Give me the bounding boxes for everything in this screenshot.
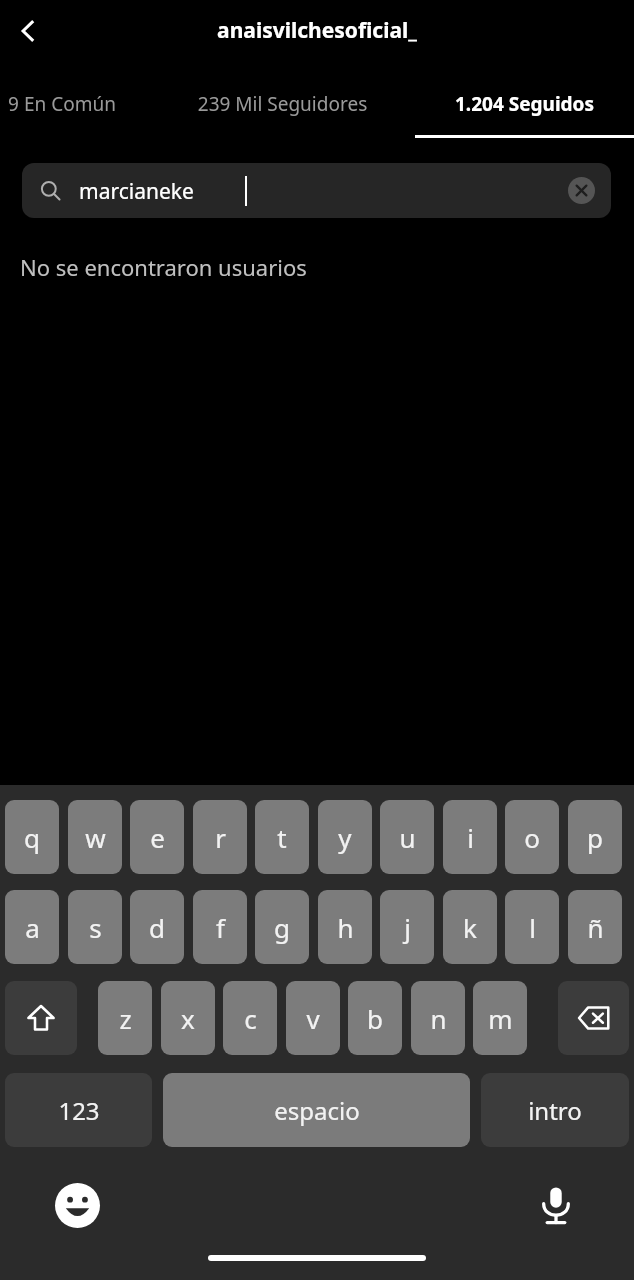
- staticText: 239 Mil Seguidores: [150, 91, 415, 117]
- button[interactable]: w: [68, 800, 122, 874]
- staticText: n: [430, 1001, 447, 1036]
- staticText: w: [85, 820, 106, 855]
- button[interactable]: y: [318, 800, 372, 874]
- staticText: h: [337, 910, 354, 945]
- staticText: f: [216, 910, 225, 945]
- staticText: 1.204 Seguidos: [415, 91, 634, 117]
- button[interactable]: o: [505, 800, 559, 874]
- button[interactable]: Voice input: [529, 1178, 583, 1232]
- staticText: y: [338, 820, 352, 855]
- button[interactable]: q: [5, 800, 59, 874]
- staticText: g: [274, 910, 290, 945]
- button[interactable]: 239 Mil Seguidores: [150, 78, 415, 130]
- button[interactable]: u: [380, 800, 434, 874]
- staticText: ñ: [587, 910, 604, 945]
- staticText: c: [244, 1001, 257, 1036]
- staticText: s: [89, 910, 102, 945]
- button[interactable]: 9 En Común: [0, 78, 146, 130]
- button[interactable]: h: [318, 890, 372, 964]
- button[interactable]: espacio: [163, 1073, 470, 1147]
- button[interactable]: r: [193, 800, 247, 874]
- button[interactable]: Back: [0, 0, 56, 62]
- button[interactable]: Shift: [5, 981, 77, 1055]
- button[interactable]: g: [255, 890, 309, 964]
- staticText: intro: [528, 1094, 582, 1127]
- staticText: marcianeke: [79, 177, 479, 206]
- button[interactable]: ñ: [568, 890, 622, 964]
- button[interactable]: f: [193, 890, 247, 964]
- staticText: 123: [58, 1094, 100, 1127]
- staticText: t: [277, 820, 287, 855]
- button[interactable]: z: [98, 981, 152, 1055]
- button[interactable]: intro: [481, 1073, 629, 1147]
- staticText: anaisvilchesoficial_: [0, 16, 634, 45]
- button[interactable]: Emoji: [50, 1178, 104, 1232]
- staticText: k: [463, 910, 477, 945]
- button[interactable]: Backspace: [558, 981, 629, 1055]
- button[interactable]: p: [568, 800, 622, 874]
- button[interactable]: m: [473, 981, 527, 1055]
- button[interactable]: marcianeke: [22, 163, 611, 218]
- button[interactable]: 123: [5, 1073, 152, 1147]
- staticText: 9 En Común: [0, 91, 146, 117]
- button[interactable]: s: [68, 890, 122, 964]
- staticText: i: [467, 820, 474, 855]
- button[interactable]: 1.204 Seguidos: [415, 78, 634, 130]
- button[interactable]: j: [380, 890, 434, 964]
- button[interactable]: x: [161, 981, 215, 1055]
- staticText: No se encontraron usuarios: [20, 252, 520, 282]
- button[interactable]: a: [5, 890, 59, 964]
- staticText: p: [587, 820, 603, 855]
- button[interactable]: e: [130, 800, 184, 874]
- button[interactable]: c: [223, 981, 277, 1055]
- button[interactable]: Clear search: [568, 177, 595, 204]
- staticText: o: [524, 820, 540, 855]
- button[interactable]: t: [255, 800, 309, 874]
- staticText: z: [119, 1001, 132, 1036]
- button[interactable]: l: [505, 890, 559, 964]
- button[interactable]: d: [130, 890, 184, 964]
- staticText: d: [149, 910, 165, 945]
- staticText: q: [24, 820, 40, 855]
- button[interactable]: b: [348, 981, 402, 1055]
- staticText: r: [215, 820, 226, 855]
- button[interactable]: n: [411, 981, 465, 1055]
- staticText: m: [488, 1001, 513, 1036]
- staticText: v: [306, 1001, 320, 1036]
- button[interactable]: i: [443, 800, 497, 874]
- staticText: espacio: [274, 1094, 360, 1127]
- staticText: b: [367, 1001, 383, 1036]
- staticText: x: [181, 1001, 195, 1036]
- staticText: l: [529, 910, 536, 945]
- staticText: a: [25, 910, 40, 945]
- staticText: u: [399, 820, 416, 855]
- staticText: j: [404, 910, 411, 945]
- button[interactable]: k: [443, 890, 497, 964]
- staticText: e: [150, 820, 165, 855]
- button[interactable]: v: [286, 981, 340, 1055]
